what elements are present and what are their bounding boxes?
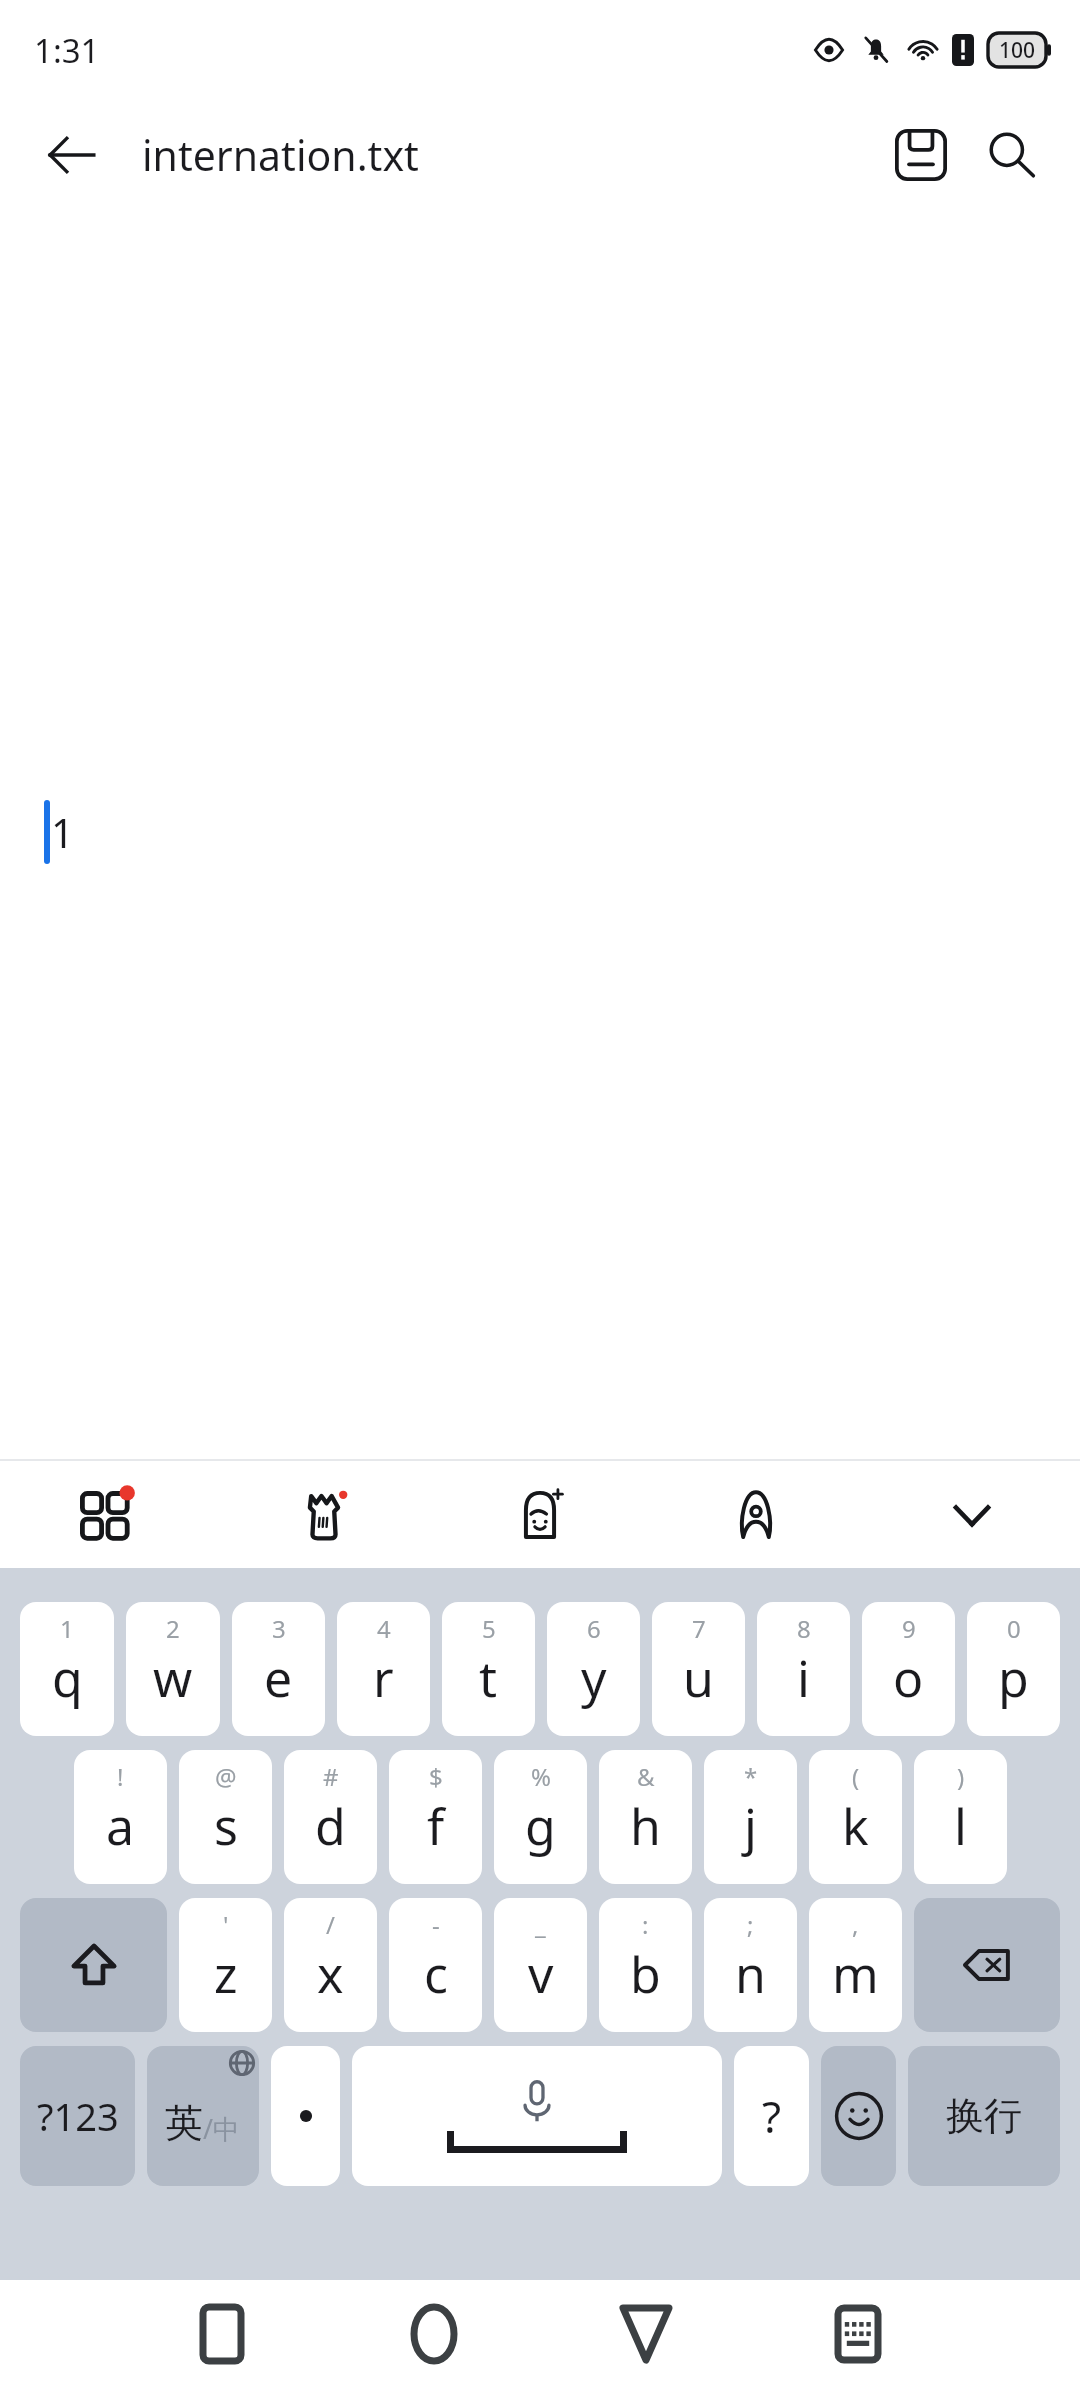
button[interactable]: 3 xyxy=(232,1602,325,1736)
button[interactable]: ' xyxy=(179,1898,272,2032)
button[interactable]: / xyxy=(284,1898,377,2032)
staticText: k xyxy=(842,1792,869,1860)
button[interactable]: * xyxy=(704,1750,797,1884)
button[interactable]: Save xyxy=(876,110,966,200)
staticText: 0 xyxy=(1007,1612,1021,1645)
button[interactable]: ; xyxy=(704,1898,797,2032)
button[interactable]: 5 xyxy=(442,1602,535,1736)
button[interactable]: Stickers xyxy=(432,1460,648,1568)
staticText: i xyxy=(797,1644,810,1712)
button[interactable]: Keyboard xyxy=(752,2280,964,2388)
staticText: & xyxy=(637,1760,655,1793)
button[interactable]: Back xyxy=(28,111,116,199)
button[interactable]: : xyxy=(599,1898,692,2032)
staticText: x xyxy=(317,1940,344,2008)
staticText: ) xyxy=(957,1760,965,1793)
staticText: m xyxy=(832,1940,879,2008)
button[interactable]: 1 xyxy=(0,210,1080,1460)
staticText: e xyxy=(264,1644,293,1712)
staticText: - xyxy=(432,1908,440,1941)
button[interactable]: Home xyxy=(328,2280,540,2388)
staticText: g xyxy=(525,1792,556,1860)
button[interactable]: , xyxy=(809,1898,902,2032)
button[interactable]: ) xyxy=(914,1750,1007,1884)
staticText: f xyxy=(427,1792,445,1860)
staticText: % xyxy=(531,1760,551,1793)
button[interactable]: @ xyxy=(179,1750,272,1884)
staticText: 2 xyxy=(166,1612,180,1645)
staticText: h xyxy=(630,1792,661,1860)
staticText: 3 xyxy=(272,1612,286,1645)
button[interactable]: Question mark xyxy=(734,2046,809,2186)
button[interactable]: Language xyxy=(147,2046,259,2186)
button[interactable]: Skins xyxy=(216,1460,432,1568)
button[interactable]: ! xyxy=(74,1750,167,1884)
staticText: _ xyxy=(535,1908,546,1941)
staticText: /中 xyxy=(203,2110,241,2147)
staticText: 1:31 xyxy=(34,28,100,73)
button[interactable]: Emoji xyxy=(821,2046,896,2186)
staticText: ? xyxy=(762,2086,782,2146)
button[interactable]: & xyxy=(599,1750,692,1884)
staticText: # xyxy=(323,1760,339,1793)
staticText: t xyxy=(479,1644,498,1712)
button[interactable]: Enter xyxy=(908,2046,1060,2186)
button[interactable]: 2 xyxy=(126,1602,220,1736)
staticText: z xyxy=(214,1940,238,2008)
staticText: * xyxy=(744,1760,758,1793)
button[interactable]: 6 xyxy=(547,1602,640,1736)
staticText: : xyxy=(642,1908,649,1941)
button[interactable]: $ xyxy=(389,1750,482,1884)
staticText: 7 xyxy=(692,1612,706,1645)
staticText: 5 xyxy=(482,1612,496,1645)
staticText: o xyxy=(893,1644,924,1712)
staticText: 100 xyxy=(999,36,1036,65)
staticText: internation.txt xyxy=(142,127,419,183)
button[interactable]: Shift xyxy=(20,1898,167,2032)
staticText: a xyxy=(106,1792,135,1860)
staticText: ?123 xyxy=(37,2090,119,2142)
button[interactable]: Account xyxy=(648,1460,864,1568)
button[interactable]: Backspace xyxy=(914,1898,1060,2032)
staticText: / xyxy=(326,1908,335,1941)
staticText: q xyxy=(52,1644,83,1712)
button[interactable]: Symbols xyxy=(20,2046,135,2186)
staticText: b xyxy=(630,1940,661,2008)
button[interactable]: - xyxy=(389,1898,482,2032)
button[interactable]: 4 xyxy=(337,1602,430,1736)
staticText: s xyxy=(214,1792,238,1860)
staticText: , xyxy=(852,1908,859,1941)
staticText: y xyxy=(581,1644,607,1712)
staticText: w xyxy=(153,1644,193,1712)
staticText: 换行 xyxy=(946,2092,1022,2140)
staticText: n xyxy=(735,1940,766,2008)
button[interactable]: Period xyxy=(271,2046,340,2186)
staticText: 1 xyxy=(51,805,74,859)
button[interactable]: Hide keyboard xyxy=(864,1460,1080,1568)
button[interactable]: 9 xyxy=(862,1602,955,1736)
button[interactable]: Search xyxy=(966,110,1056,200)
staticText: @ xyxy=(215,1760,237,1793)
staticText: 6 xyxy=(587,1612,601,1645)
button[interactable]: 7 xyxy=(652,1602,745,1736)
button[interactable]: % xyxy=(494,1750,587,1884)
staticText: p xyxy=(998,1644,1029,1712)
button[interactable]: # xyxy=(284,1750,377,1884)
staticText: 4 xyxy=(377,1612,391,1645)
button[interactable]: ( xyxy=(809,1750,902,1884)
staticText: ' xyxy=(223,1908,229,1941)
staticText: 1 xyxy=(60,1612,74,1645)
button[interactable]: 1 xyxy=(20,1602,114,1736)
button[interactable]: Themes xyxy=(0,1460,216,1568)
button[interactable]: 8 xyxy=(757,1602,850,1736)
button[interactable]: 0 xyxy=(967,1602,1060,1736)
button[interactable]: Back xyxy=(540,2280,752,2388)
button[interactable]: Space xyxy=(352,2046,722,2186)
staticText: ; xyxy=(747,1908,754,1941)
staticText: ( xyxy=(852,1760,860,1793)
staticText: 英 xyxy=(165,2099,203,2147)
staticText: $ xyxy=(429,1760,443,1793)
staticText: r xyxy=(373,1644,394,1712)
button[interactable]: _ xyxy=(494,1898,587,2032)
button[interactable]: Recents xyxy=(116,2280,328,2388)
